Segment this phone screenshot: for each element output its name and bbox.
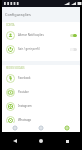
button[interactable]: Sair / gerir perfil xyxy=(2,42,80,56)
button[interactable]: Home xyxy=(2,123,28,132)
button[interactable]: Back xyxy=(2,132,28,150)
other: Home xyxy=(13,126,17,130)
other: Back xyxy=(13,139,17,143)
button[interactable]: Instagram xyxy=(2,99,80,113)
button[interactable]: Profile xyxy=(54,123,80,132)
button[interactable]: Facebook xyxy=(2,71,80,85)
button[interactable]: Alterar Notificações xyxy=(2,28,80,42)
other: Profile xyxy=(65,126,69,130)
staticText: Instagram xyxy=(18,104,32,108)
staticText: CONTA xyxy=(6,23,15,27)
staticText: Configurações xyxy=(5,12,31,17)
staticText: Sair / gerir perfil xyxy=(18,47,40,51)
button[interactable]: Search xyxy=(28,123,54,132)
staticText: Whatsapp xyxy=(18,118,32,122)
staticText: Facebook xyxy=(18,76,31,80)
button[interactable]: Whatsapp xyxy=(2,113,80,127)
other: Home xyxy=(39,139,43,143)
staticText: Youtube xyxy=(18,90,29,94)
button[interactable]: Recents xyxy=(54,132,80,150)
staticText: REDES SOCIAIS xyxy=(6,66,25,70)
staticText: Alterar Notificações xyxy=(18,33,44,37)
button[interactable]: Home xyxy=(28,132,54,150)
other: Search xyxy=(39,126,43,130)
button[interactable]: Youtube xyxy=(2,85,80,99)
